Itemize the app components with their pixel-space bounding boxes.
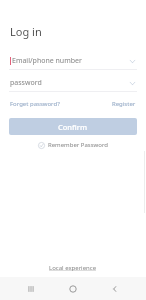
staticText: Confirm [58,122,88,132]
staticText: Local experience [49,264,97,272]
button[interactable]: Forget password? [10,100,60,108]
staticText: password [10,78,42,88]
button[interactable]: Back [104,278,126,300]
staticText: Email/phone number [12,56,82,66]
staticText: Forget password? [10,100,60,108]
button[interactable]: Home [62,278,84,300]
button[interactable]: Recent apps [20,278,42,300]
button[interactable]: password [0,75,146,92]
staticText: Remember Password [48,141,108,149]
button[interactable]: Confirm [9,118,137,135]
staticText: Register [112,100,136,108]
staticText: Log in [10,24,42,39]
button[interactable]: Register [112,100,136,108]
button[interactable]: Local experience [49,264,97,272]
button[interactable]: Email/phone number [0,53,146,70]
button[interactable]: Remember Password [0,141,146,149]
